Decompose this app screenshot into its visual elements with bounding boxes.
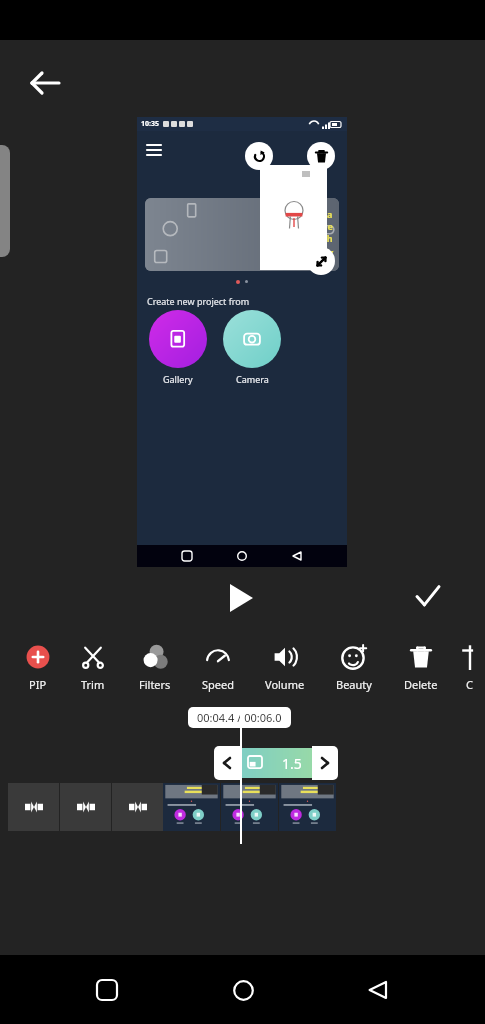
- staticText: Create new project from: [147, 295, 250, 307]
- button[interactable]: Filters: [124, 628, 186, 708]
- button[interactable]: Volume: [250, 628, 320, 708]
- button[interactable]: Clip: [279, 783, 336, 831]
- staticText: C: [466, 677, 473, 692]
- staticText: Filters: [139, 677, 171, 692]
- staticText: Gallery: [163, 373, 193, 385]
- button[interactable]: C: [454, 628, 485, 708]
- staticText: 00:04.4 / 00:06.0: [197, 710, 282, 725]
- button[interactable]: Back: [350, 962, 406, 1018]
- staticText: Speed: [202, 677, 234, 692]
- button[interactable]: Play: [215, 572, 267, 624]
- button[interactable]: Resize: [307, 247, 335, 275]
- staticText: Volume: [265, 677, 305, 692]
- button[interactable]: Gallery: [149, 310, 207, 385]
- button[interactable]: Home: [215, 962, 271, 1018]
- button[interactable]: Recents: [79, 962, 135, 1018]
- button[interactable]: PIP: [14, 628, 62, 708]
- staticText: Create a: [295, 208, 333, 220]
- button[interactable]: Camera: [223, 310, 281, 385]
- button[interactable]: Speed: [186, 628, 250, 708]
- button[interactable]: Clip: [221, 783, 278, 831]
- button[interactable]: Back: [22, 60, 68, 106]
- button[interactable]: Previous: [214, 746, 240, 780]
- staticText: Go viral with: [276, 232, 333, 244]
- staticText: Delete: [404, 677, 438, 692]
- button[interactable]: Transition: [8, 783, 59, 831]
- button[interactable]: 1.5: [240, 748, 312, 778]
- staticText: Beauty: [336, 677, 372, 692]
- button[interactable]: Delete: [388, 628, 454, 708]
- staticText: Camera: [236, 373, 269, 385]
- button[interactable]: Trim: [62, 628, 124, 708]
- button[interactable]: Delete clip: [307, 142, 335, 170]
- staticText: PIP: [29, 677, 47, 692]
- button[interactable]: Beauty: [320, 628, 388, 708]
- button[interactable]: Confirm: [404, 572, 452, 620]
- button[interactable]: Rotate: [245, 142, 273, 170]
- staticText: Trim: [81, 677, 105, 692]
- button[interactable]: Next: [312, 746, 338, 780]
- button[interactable]: Clip: [163, 783, 220, 831]
- staticText: Latest Tr: [279, 244, 333, 262]
- staticText: 10:35: [141, 119, 159, 129]
- button[interactable]: Transition: [60, 783, 111, 831]
- button[interactable]: Transition: [112, 783, 163, 831]
- staticText: masterpiece: [277, 220, 333, 232]
- staticText: 1.5: [282, 754, 302, 773]
